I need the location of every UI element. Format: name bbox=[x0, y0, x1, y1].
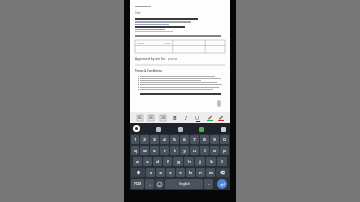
button[interactable]: 8 bbox=[200, 135, 209, 144]
staticText: I bbox=[185, 114, 187, 121]
button[interactable]: n bbox=[196, 168, 205, 177]
button[interactable]: GIF bbox=[176, 125, 184, 133]
staticText: m bbox=[209, 170, 213, 176]
button[interactable]: r bbox=[160, 146, 169, 155]
button[interactable]: 1 bbox=[131, 135, 139, 144]
button[interactable]: English bbox=[165, 179, 203, 189]
staticText: 1 bbox=[134, 137, 137, 143]
staticText: 9 bbox=[213, 137, 216, 143]
button[interactable]: y bbox=[180, 146, 189, 155]
staticText: Approved by me for bbox=[135, 57, 166, 61]
button[interactable]: , bbox=[145, 179, 154, 189]
button[interactable]: i bbox=[200, 146, 209, 155]
button[interactable]: g bbox=[173, 157, 183, 166]
staticText: ?123 bbox=[134, 182, 141, 186]
button[interactable]: v bbox=[176, 168, 185, 177]
button[interactable]: a bbox=[133, 157, 142, 166]
button[interactable]: b bbox=[186, 168, 195, 177]
staticText: English bbox=[179, 182, 190, 186]
staticText: f bbox=[167, 159, 169, 165]
staticText: l bbox=[221, 159, 223, 165]
button[interactable]: Align left bbox=[135, 113, 144, 122]
button[interactable]: c bbox=[166, 168, 175, 177]
staticText: b bbox=[189, 170, 192, 176]
button[interactable]: 3 bbox=[150, 135, 159, 144]
button[interactable]: f bbox=[163, 157, 172, 166]
staticText: x bbox=[159, 170, 162, 176]
button[interactable]: t bbox=[170, 146, 179, 155]
staticText: v bbox=[179, 170, 182, 176]
staticText: 7 bbox=[193, 137, 196, 143]
button[interactable]: Emoji bbox=[197, 125, 205, 133]
staticText: 5 bbox=[173, 137, 176, 143]
staticText: 6 bbox=[183, 137, 186, 143]
button[interactable]: 5 bbox=[170, 135, 179, 144]
button[interactable]: d bbox=[153, 157, 162, 166]
button[interactable]: . bbox=[204, 179, 213, 189]
staticText: i bbox=[204, 148, 206, 154]
staticText: , bbox=[149, 181, 151, 187]
staticText: j bbox=[199, 159, 201, 165]
button[interactable]: w bbox=[140, 146, 149, 155]
staticText: B bbox=[173, 114, 177, 121]
button[interactable]: Align right bbox=[158, 113, 167, 122]
staticText: u bbox=[193, 148, 196, 154]
staticText: Value bbox=[164, 41, 171, 44]
button[interactable]: Backspace bbox=[216, 168, 229, 177]
button[interactable]: Voice input bbox=[219, 125, 227, 133]
staticText: 4 bbox=[163, 137, 166, 143]
button[interactable]: l bbox=[217, 157, 227, 166]
button[interactable]: Shift bbox=[131, 168, 145, 177]
button[interactable]: o bbox=[210, 146, 219, 155]
button[interactable]: Highlight color bbox=[205, 113, 214, 122]
button[interactable]: j bbox=[195, 157, 205, 166]
button[interactable]: p bbox=[220, 146, 229, 155]
button[interactable]: 6 bbox=[180, 135, 189, 144]
button[interactable]: z bbox=[146, 168, 155, 177]
staticText: Name bbox=[137, 41, 144, 44]
button[interactable]: h bbox=[184, 157, 194, 166]
staticText: . bbox=[208, 181, 210, 187]
button[interactable]: ?123 bbox=[131, 179, 144, 189]
staticText: 2 bbox=[143, 137, 146, 143]
staticText: w bbox=[143, 148, 147, 154]
staticText: s bbox=[146, 159, 149, 165]
staticText: 0 bbox=[223, 137, 226, 143]
staticText: c bbox=[169, 170, 172, 176]
staticText: n bbox=[199, 170, 202, 176]
staticText: y bbox=[183, 148, 186, 154]
button[interactable]: q bbox=[131, 146, 139, 155]
staticText: 8 bbox=[203, 137, 206, 143]
staticText: z bbox=[150, 170, 152, 176]
button[interactable]: 2 bbox=[140, 135, 149, 144]
button[interactable]: Emoji bbox=[155, 179, 164, 189]
button[interactable]: m bbox=[206, 168, 215, 177]
button[interactable]: e bbox=[150, 146, 159, 155]
staticText: g bbox=[177, 159, 180, 165]
staticText: o bbox=[213, 148, 216, 154]
button[interactable]: Enter bbox=[217, 179, 227, 189]
button[interactable]: 9 bbox=[210, 135, 219, 144]
button[interactable]: s bbox=[143, 157, 152, 166]
button[interactable]: 4 bbox=[160, 135, 169, 144]
button[interactable]: Italic bbox=[181, 113, 190, 122]
staticText: d bbox=[156, 159, 159, 165]
staticText: e bbox=[153, 148, 156, 154]
staticText: k bbox=[210, 159, 213, 165]
button[interactable]: Bold bbox=[170, 113, 179, 122]
staticText: 3 bbox=[153, 137, 156, 143]
button[interactable]: 0 bbox=[220, 135, 229, 144]
button[interactable]: k bbox=[206, 157, 216, 166]
button[interactable]: x bbox=[156, 168, 165, 177]
staticText: U bbox=[195, 114, 200, 121]
button[interactable]: Google search bbox=[133, 125, 140, 132]
staticText: Date bbox=[135, 11, 141, 15]
button[interactable]: Align center bbox=[146, 113, 155, 122]
staticText: r bbox=[164, 148, 166, 154]
button[interactable]: Underline bbox=[193, 113, 202, 122]
button[interactable]: Stickers bbox=[154, 125, 162, 133]
button[interactable]: Text color bbox=[216, 113, 225, 122]
button[interactable]: u bbox=[190, 146, 199, 155]
staticText: q bbox=[134, 148, 137, 154]
button[interactable]: 7 bbox=[190, 135, 199, 144]
